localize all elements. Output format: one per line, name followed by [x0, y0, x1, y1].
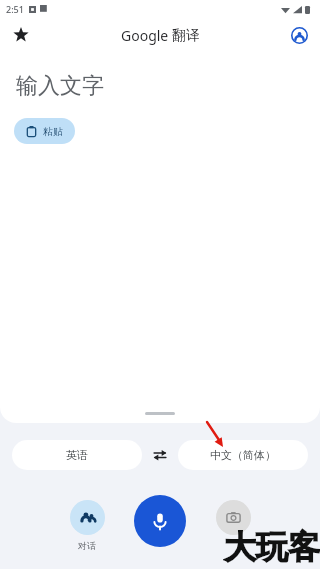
button[interactable] [212, 500, 254, 535]
staticText: 输入文字 [16, 72, 104, 100]
staticText: 大玩客 [224, 527, 320, 567]
staticText: 翻译 [172, 27, 200, 45]
button[interactable]: Swap languages [142, 440, 178, 470]
staticText: 粘贴 [43, 125, 63, 138]
button[interactable]: Account [283, 19, 315, 51]
button[interactable]: 粘贴 [14, 118, 75, 144]
staticText: 对话 [78, 540, 96, 551]
button[interactable]: 英语 [12, 440, 142, 470]
button[interactable]: 对话 [66, 500, 108, 551]
button[interactable]: Speak [134, 495, 186, 547]
staticText: 2:51 [6, 3, 24, 15]
staticText: Google [121, 26, 172, 45]
staticText: 英语 [66, 448, 88, 462]
button[interactable]: Saved [4, 18, 38, 52]
staticText: 中文（简体） [210, 448, 276, 462]
button[interactable]: 中文（简体） [178, 440, 308, 470]
